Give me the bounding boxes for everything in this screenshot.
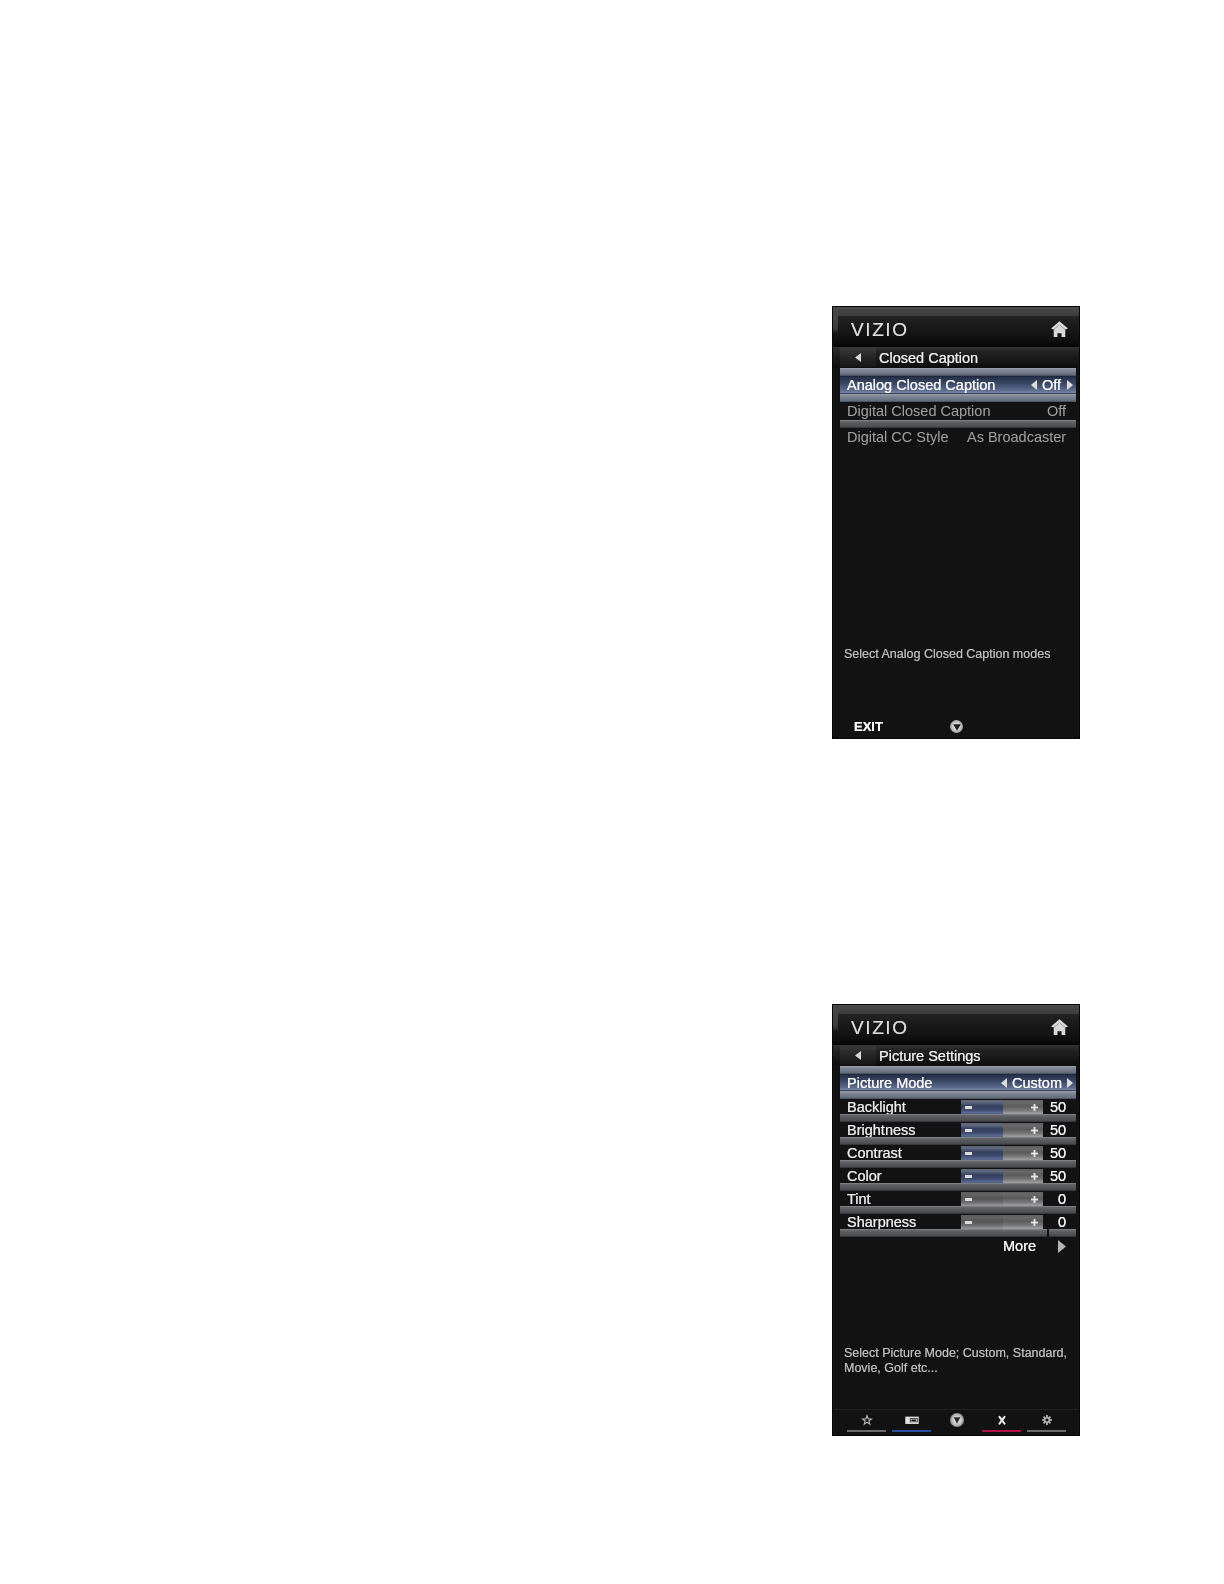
staticText: Custom (1012, 1075, 1062, 1091)
staticText: Digital CC Style (847, 429, 949, 445)
button[interactable]: Contrast (840, 1145, 1076, 1160)
staticText: Off (1042, 377, 1062, 393)
staticText: 50 (1050, 1099, 1067, 1114)
button[interactable]: Color (840, 1168, 1076, 1183)
button[interactable]: Back (840, 1046, 876, 1065)
staticText: Closed Caption (879, 350, 979, 366)
staticText: VIZIO (851, 1017, 909, 1038)
button[interactable]: Back (833, 1045, 1079, 1066)
staticText: Picture Mode (847, 1075, 933, 1091)
staticText: Off (1047, 403, 1067, 419)
button[interactable]: Brightness (840, 1122, 1076, 1137)
button[interactable]: Backlight (840, 1099, 1076, 1114)
staticText: Picture Settings (879, 1048, 981, 1064)
button[interactable]: EXIT (854, 719, 883, 734)
staticText: Digital Closed Caption (847, 403, 991, 419)
button[interactable]: VIZIO menu (950, 720, 963, 733)
button[interactable]: VIZIO (934, 1410, 979, 1435)
button[interactable]: Sharpness (840, 1214, 1076, 1229)
staticText: Color (847, 1168, 882, 1183)
staticText: 50 (1050, 1168, 1067, 1183)
staticText: Sharpness (847, 1214, 917, 1229)
button[interactable]: Settings (1024, 1410, 1069, 1435)
button[interactable]: Digital Closed Caption (840, 402, 1076, 420)
button[interactable]: Home (1051, 320, 1068, 337)
button[interactable]: Close (979, 1410, 1024, 1435)
button[interactable]: Digital CC Style (840, 428, 1076, 446)
staticText: As Broadcaster (967, 429, 1067, 445)
staticText: Analog Closed Caption (847, 377, 996, 393)
staticText: Brightness (847, 1122, 916, 1137)
staticText: Tint (847, 1191, 871, 1206)
staticText: 50 (1050, 1122, 1067, 1137)
button[interactable]: Analog Closed Caption (840, 376, 1076, 394)
staticText: Select Picture Mode; Custom, Standard, M… (844, 1346, 1068, 1374)
button[interactable]: Back (833, 347, 1079, 368)
staticText: 50 (1050, 1145, 1067, 1160)
button[interactable]: Home (1051, 1018, 1068, 1035)
staticText: Backlight (847, 1099, 906, 1114)
button[interactable]: Back (840, 348, 876, 367)
button[interactable]: Picture Mode (840, 1074, 1076, 1091)
button[interactable]: Favorites (844, 1410, 889, 1435)
staticText: VIZIO (851, 319, 909, 340)
staticText: 0 (1058, 1214, 1067, 1229)
staticText: More (1003, 1238, 1037, 1254)
staticText: Select Analog Closed Caption modes (844, 647, 1051, 661)
button[interactable]: More (840, 1237, 1076, 1255)
staticText: Contrast (847, 1145, 902, 1160)
button[interactable]: Picture (889, 1410, 934, 1435)
staticText: 0 (1058, 1191, 1067, 1206)
button[interactable]: Tint (840, 1191, 1076, 1206)
